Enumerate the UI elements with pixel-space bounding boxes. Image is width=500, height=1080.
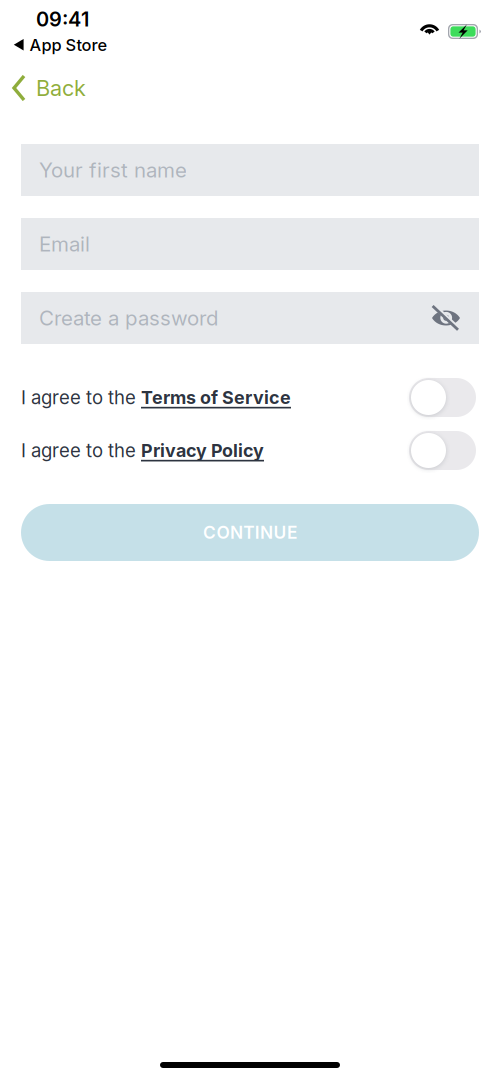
button[interactable]: Your first name — [21, 144, 479, 196]
button[interactable]: Email — [21, 218, 479, 270]
staticText: Privacy Policy — [141, 440, 264, 461]
staticText: Your first name — [39, 158, 187, 182]
button[interactable]: CONTINUE — [21, 504, 479, 561]
staticText: CONTINUE — [203, 522, 297, 543]
button[interactable]: Terms of Service — [141, 387, 291, 408]
button[interactable]: Back — [12, 70, 86, 106]
staticText: Back — [36, 75, 86, 101]
staticText: Terms of Service — [141, 387, 291, 408]
staticText: 09:41 — [36, 7, 89, 31]
button[interactable]: Privacy Policy — [141, 440, 264, 461]
staticText: I agree to the — [21, 439, 141, 462]
staticText: Create a password — [39, 306, 219, 330]
staticText: I agree to the — [21, 386, 141, 409]
staticText: App Store — [30, 35, 108, 55]
button[interactable]: Create a password — [21, 292, 479, 344]
button[interactable]: Terms of Service — [409, 378, 476, 417]
button[interactable]: Privacy Policy — [409, 431, 476, 470]
staticText: Email — [39, 232, 90, 256]
